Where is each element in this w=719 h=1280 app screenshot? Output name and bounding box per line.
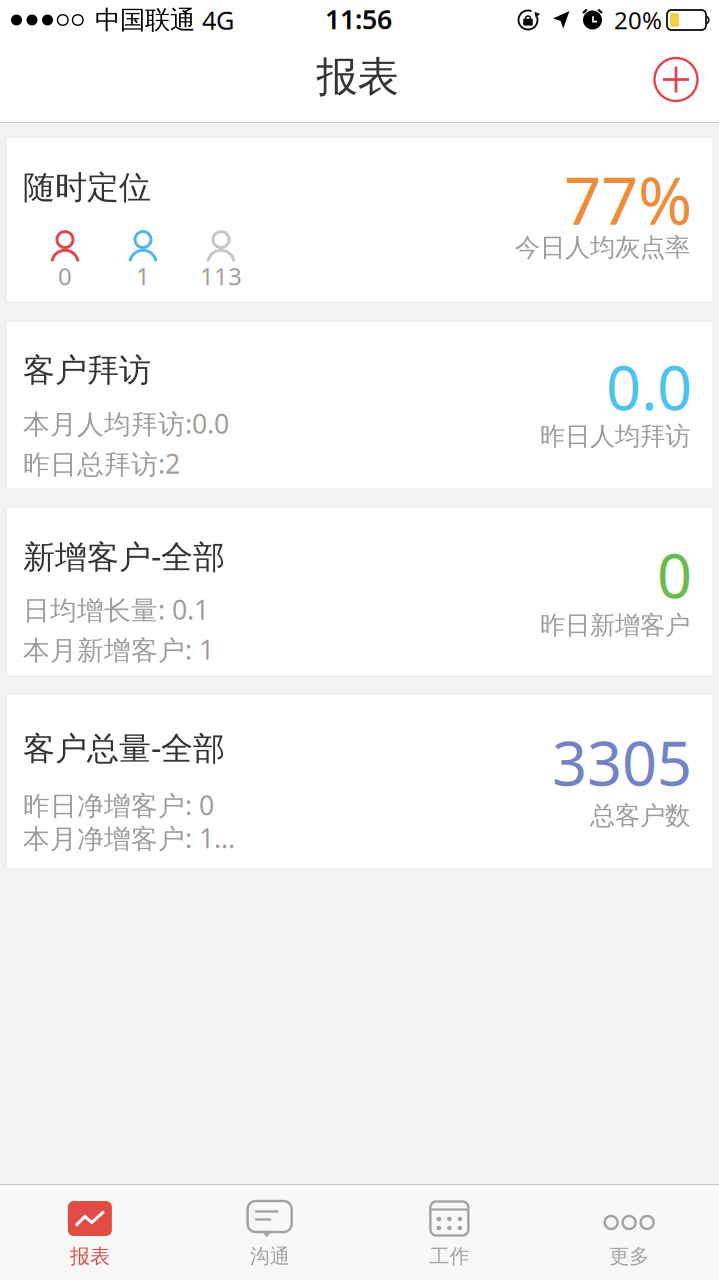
button[interactable]: 工作 bbox=[359, 1185, 539, 1280]
staticText: 报表 bbox=[70, 1244, 110, 1269]
staticText: 0 bbox=[657, 534, 692, 615]
staticText: 4G bbox=[202, 3, 234, 37]
staticText: 新增客户-全部 bbox=[23, 535, 225, 577]
staticText: 本月新增客户: 1 bbox=[23, 632, 214, 667]
button[interactable]: 报表 bbox=[0, 1185, 180, 1280]
staticText: 昨日新增客户 bbox=[540, 610, 690, 641]
button[interactable]: 更多 bbox=[539, 1185, 719, 1280]
staticText: 0.0 bbox=[606, 346, 692, 427]
staticText: 沟通 bbox=[250, 1244, 290, 1269]
staticText: 1 bbox=[136, 260, 150, 292]
staticText: 本月人均拜访:0.0 bbox=[23, 406, 229, 441]
staticText: 昨日净增客户: 0 bbox=[23, 787, 214, 823]
staticText: 昨日人均拜访 bbox=[540, 421, 690, 452]
staticText: 113 bbox=[200, 260, 242, 292]
staticText: 3305 bbox=[552, 721, 692, 803]
button[interactable]: 客户拜访 bbox=[6, 321, 713, 489]
button[interactable]: 新增客户-全部 bbox=[6, 507, 713, 676]
staticText: 中国联通 bbox=[95, 4, 195, 35]
staticText: 昨日总拜访:2 bbox=[23, 446, 180, 481]
staticText: 随时定位 bbox=[23, 168, 151, 207]
button[interactable]: 随时定位 bbox=[6, 137, 713, 302]
staticText: 20% bbox=[614, 4, 662, 36]
staticText: 报表 bbox=[316, 52, 398, 102]
staticText: 客户拜访 bbox=[23, 351, 151, 390]
button[interactable]: 客户总量-全部 bbox=[6, 694, 713, 869]
staticText: 77% bbox=[564, 156, 692, 243]
staticText: 0 bbox=[58, 260, 72, 292]
staticText: 总客户数 bbox=[590, 800, 690, 831]
button[interactable]: 沟通 bbox=[180, 1185, 360, 1280]
staticText: 客户总量-全部 bbox=[23, 726, 225, 769]
staticText: 今日人均灰点率 bbox=[515, 232, 690, 263]
staticText: 11:56 bbox=[325, 1, 392, 37]
staticText: 本月净增客户: 1... bbox=[23, 820, 235, 856]
button[interactable]: Add bbox=[649, 52, 703, 106]
staticText: 更多 bbox=[609, 1244, 649, 1269]
staticText: 工作 bbox=[429, 1244, 469, 1269]
staticText: 日均增长量: 0.1 bbox=[23, 592, 209, 627]
